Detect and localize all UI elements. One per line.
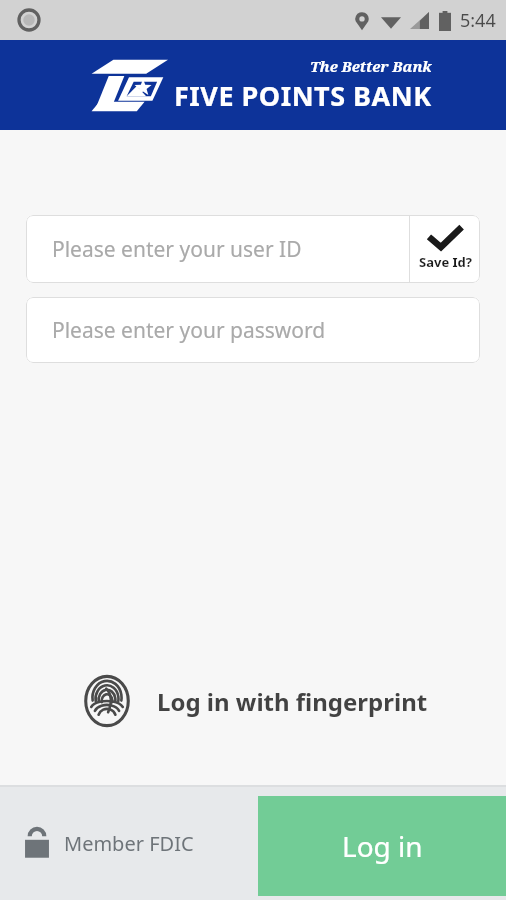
other: Log in with fingerprint — [79, 673, 135, 729]
staticText: Save Id? — [419, 253, 472, 271]
button[interactable]: Member FDIC — [24, 827, 194, 859]
staticText: Please enter your password — [52, 316, 326, 345]
staticText: Please enter your user ID — [52, 235, 302, 264]
button[interactable]: Please enter your password — [26, 297, 480, 363]
staticText: The Better Bank — [310, 56, 432, 76]
staticText: Log in — [342, 827, 423, 865]
staticText: Member FDIC — [64, 830, 194, 857]
staticText: Log in with fingerprint — [157, 685, 428, 718]
button[interactable]: Log in with fingerprint — [0, 665, 506, 737]
button[interactable]: Please enter your user ID — [26, 215, 409, 283]
button[interactable]: Log in — [258, 796, 506, 896]
button[interactable]: Save Id? — [410, 215, 480, 283]
staticText: FIVE POINTS BANK — [174, 77, 432, 114]
staticText: 5:44 — [460, 8, 496, 33]
